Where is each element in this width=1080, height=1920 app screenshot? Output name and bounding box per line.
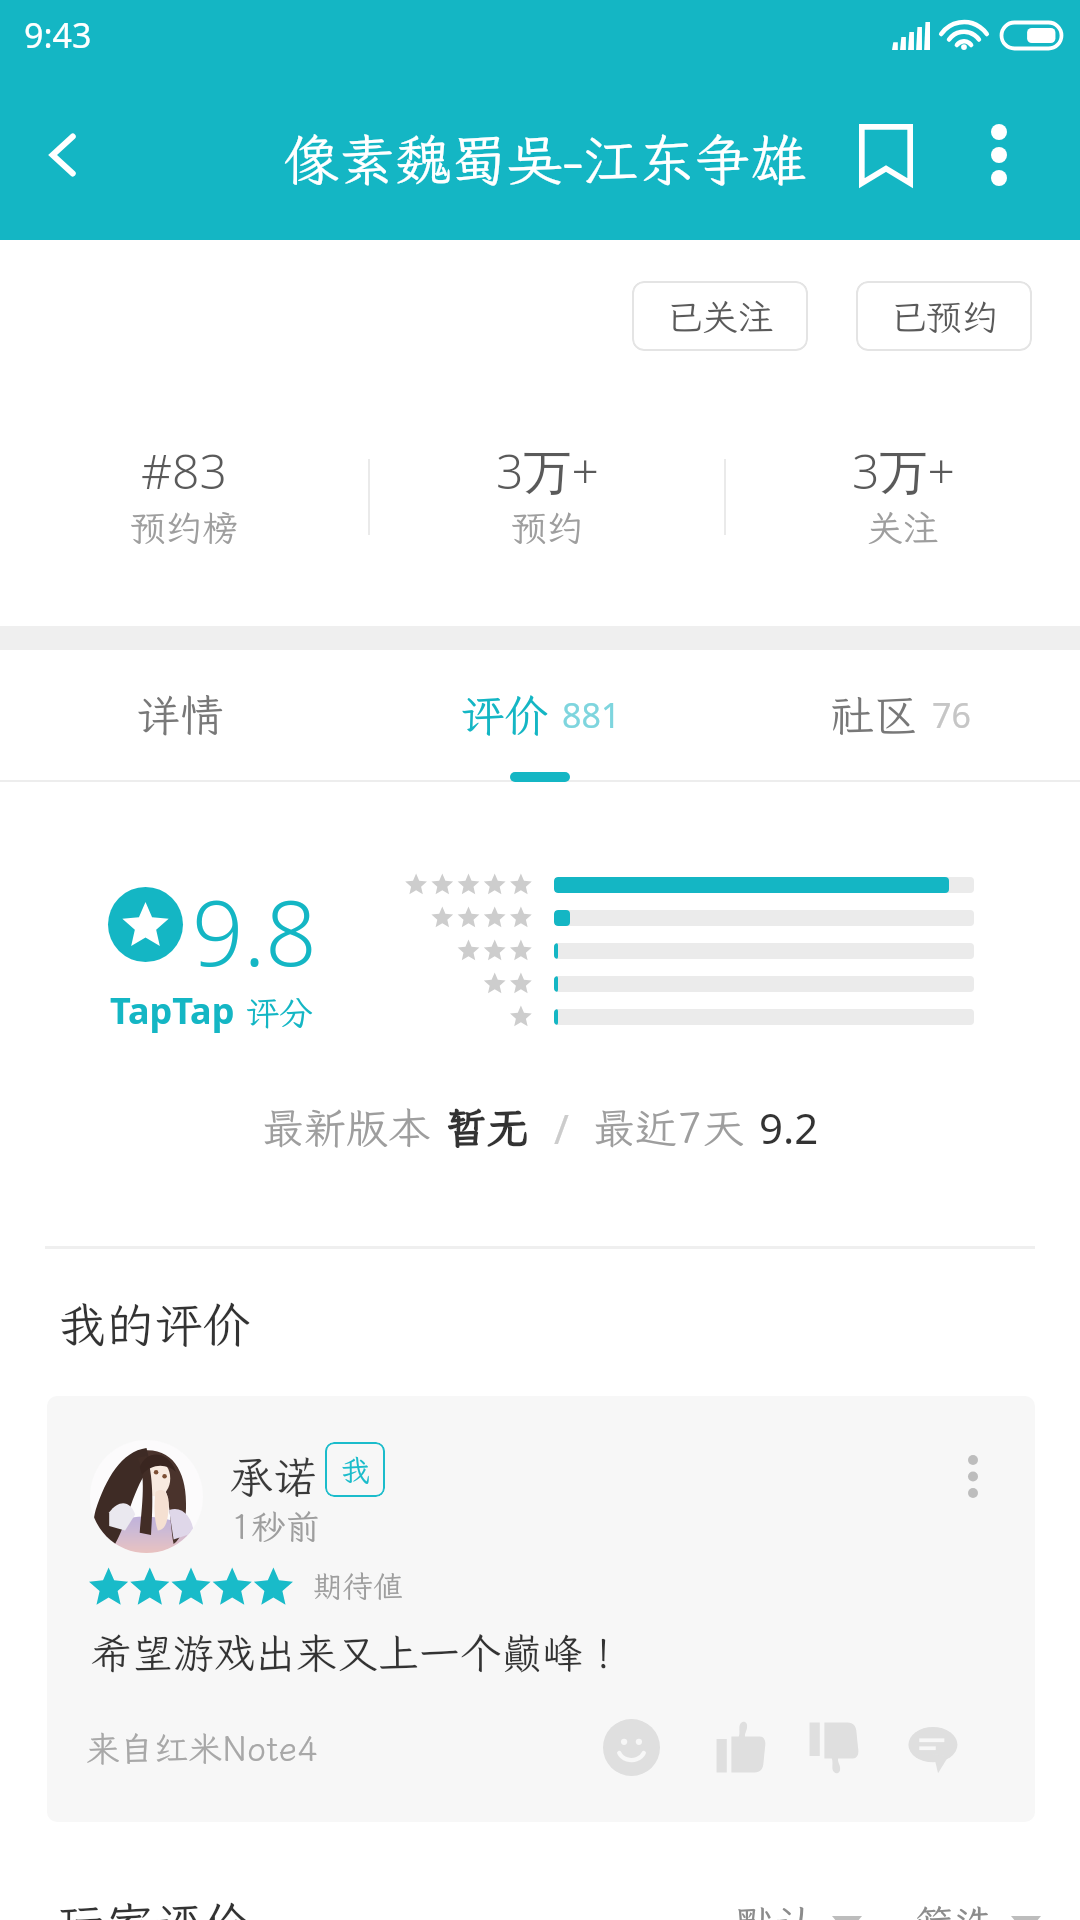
staticText: 暂无 <box>445 1100 530 1155</box>
staticText: 承诺 <box>229 1448 317 1506</box>
button[interactable]: 社区 <box>720 650 1080 780</box>
button[interactable]: Back <box>14 105 114 205</box>
staticText: 9:43 <box>24 12 92 58</box>
staticText: 详情 <box>136 686 224 744</box>
staticText: 我的评价 <box>58 1292 251 1355</box>
button[interactable]: 详情 <box>0 650 360 780</box>
button[interactable]: Comment <box>900 1714 966 1780</box>
button[interactable]: Bookmark <box>836 105 936 205</box>
button[interactable]: Review options <box>943 1446 1003 1506</box>
staticText: 筛选 <box>914 1898 994 1920</box>
staticText: 最近7天 <box>593 1100 745 1155</box>
button[interactable]: #83 <box>0 431 368 571</box>
staticText: 期待值 <box>313 1566 403 1606</box>
button[interactable]: 已关注 <box>632 281 808 351</box>
button[interactable]: 已预约 <box>856 281 1032 351</box>
button[interactable]: Like <box>707 1714 773 1780</box>
button[interactable]: 3万+ <box>726 431 1080 571</box>
staticText: 9.2 <box>759 1099 819 1156</box>
staticText: 希望游戏出来又上一个巅峰！ <box>91 1626 624 1680</box>
button[interactable]: 默认 <box>735 1898 862 1920</box>
staticText: 评价 <box>460 686 548 744</box>
staticText: 已预约 <box>890 293 999 340</box>
staticText: #83 <box>141 438 227 503</box>
button[interactable]: More options <box>949 105 1049 205</box>
button[interactable]: 3万+ <box>370 431 724 571</box>
staticText: 玩家评价 <box>58 1892 251 1920</box>
staticText: 默认 <box>735 1898 815 1920</box>
staticText: 9.8 <box>192 870 317 993</box>
staticText: 1秒前 <box>231 1504 320 1549</box>
button[interactable]: 筛选 <box>914 1898 1041 1920</box>
staticText: 76 <box>932 692 971 738</box>
button[interactable]: Dislike <box>800 1714 866 1780</box>
staticText: 881 <box>562 692 621 738</box>
staticText: 预约 <box>511 504 584 551</box>
staticText: 关注 <box>867 504 940 551</box>
button[interactable]: Emoji <box>598 1714 664 1780</box>
staticText: 3万+ <box>852 438 955 504</box>
staticText: 预约榜 <box>130 504 239 551</box>
staticText: TapTap <box>110 986 235 1035</box>
button[interactable]: 评价 <box>360 650 720 780</box>
staticText: 像素魏蜀吴-江东争雄 <box>283 122 807 196</box>
staticText: 评分 <box>245 990 313 1035</box>
staticText: 我 <box>340 1450 370 1490</box>
staticText: 已关注 <box>666 293 775 340</box>
staticText: 最新版本 <box>262 1100 431 1155</box>
button[interactable]: 承诺 <box>47 1396 1035 1822</box>
staticText: 来自红米Note4 <box>86 1726 318 1771</box>
staticText: 3万+ <box>496 438 599 504</box>
staticText: / <box>554 1101 569 1155</box>
staticText: 社区 <box>830 686 918 744</box>
